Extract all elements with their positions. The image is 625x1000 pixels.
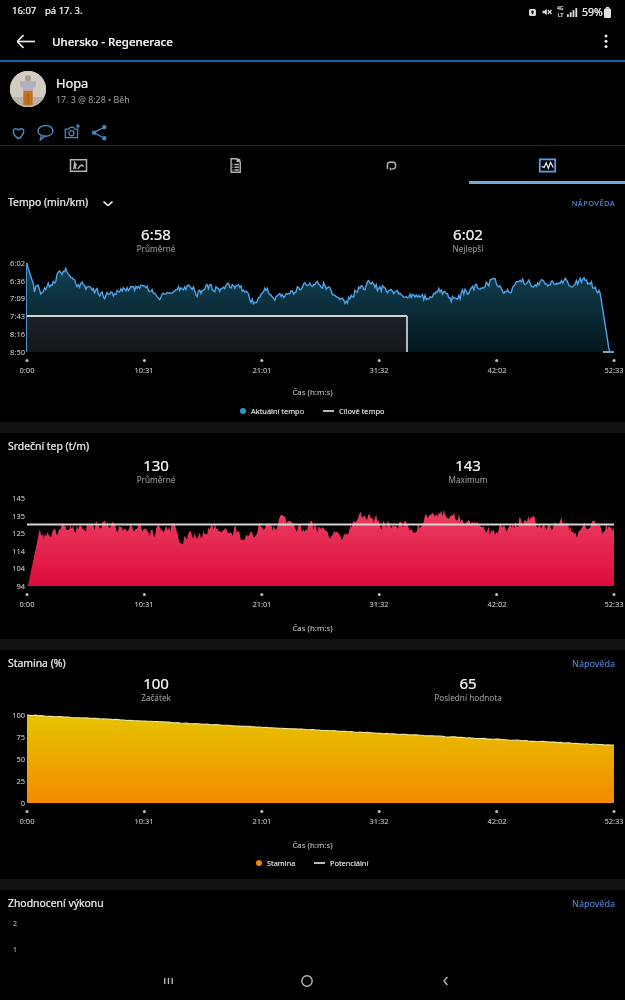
button[interactable]: Like: [5, 119, 32, 145]
button[interactable]: Back: [427, 962, 465, 1000]
staticText: 143: [312, 455, 624, 475]
staticText: 52:33: [584, 365, 625, 375]
button[interactable]: Laps: [313, 146, 469, 184]
staticText: 8:16: [0, 329, 25, 339]
staticText: 52:33: [584, 599, 625, 609]
button[interactable]: Recent apps: [149, 962, 187, 1000]
staticText: Hopa: [56, 74, 89, 91]
staticText: Tempo (min/km): [8, 195, 89, 209]
button[interactable]: Home: [288, 962, 326, 1000]
staticText: 65: [312, 673, 624, 693]
staticText: Potenciální: [330, 858, 369, 868]
button[interactable]: Nápověda: [560, 897, 615, 909]
staticText: Čas (h:m:s): [0, 623, 625, 634]
staticText: 31:32: [349, 599, 409, 609]
staticText: 100: [0, 710, 25, 720]
button[interactable]: Add photo: [59, 119, 86, 145]
staticText: pá 17. 3.: [45, 4, 83, 17]
staticText: 21:01: [232, 816, 292, 826]
staticText: 0:00: [0, 816, 57, 826]
button[interactable]: Share: [86, 119, 113, 145]
staticText: 104: [0, 563, 25, 573]
staticText: Průměrné: [0, 474, 312, 485]
staticText: Aktuální tempo: [251, 406, 305, 416]
staticText: 10:31: [114, 365, 174, 375]
staticText: 6:02: [312, 224, 624, 244]
staticText: Uhersko - Regenerace: [52, 34, 173, 50]
staticText: 1: [13, 945, 18, 955]
staticText: Nápověda: [560, 657, 615, 669]
staticText: 145: [0, 493, 25, 503]
staticText: Cílové tempo: [339, 406, 385, 416]
staticText: 42:02: [467, 599, 527, 609]
staticText: 125: [0, 528, 25, 538]
button[interactable]: Details: [157, 146, 313, 184]
staticText: LT: [558, 12, 564, 19]
button[interactable]: NÁPOVĚDA: [560, 198, 615, 208]
staticText: 21:01: [232, 365, 292, 375]
staticText: Nápověda: [560, 897, 615, 909]
staticText: 135: [0, 511, 25, 521]
staticText: Stamina: [267, 858, 296, 868]
staticText: 10:31: [114, 599, 174, 609]
staticText: Maximum: [312, 474, 624, 485]
staticText: 25: [0, 776, 25, 786]
staticText: 0:00: [0, 365, 57, 375]
staticText: 21:01: [232, 599, 292, 609]
staticText: 31:32: [349, 365, 409, 375]
staticText: Stamina (%): [8, 656, 66, 670]
staticText: 0:00: [0, 599, 57, 609]
staticText: NÁPOVĚDA: [560, 198, 615, 208]
button[interactable]: Back: [6, 22, 44, 60]
staticText: Zhodnocení výkonu: [8, 896, 104, 910]
button[interactable]: Hopa: [0, 62, 625, 116]
staticText: 7:09: [0, 293, 25, 303]
staticText: 130: [0, 455, 312, 475]
staticText: 114: [0, 546, 25, 556]
staticText: Nejlepší: [312, 243, 624, 254]
staticText: Čas (h:m:s): [0, 840, 625, 851]
staticText: 6:36: [0, 276, 25, 286]
staticText: 59%: [582, 5, 603, 19]
button[interactable]: Map: [0, 146, 157, 184]
staticText: 50: [0, 754, 25, 764]
staticText: 0: [0, 798, 25, 808]
staticText: 10:31: [114, 816, 174, 826]
staticText: 100: [0, 673, 312, 693]
staticText: 8:50: [0, 347, 25, 357]
staticText: Začátek: [0, 692, 312, 703]
staticText: 42:02: [467, 816, 527, 826]
button[interactable]: Charts: [469, 146, 625, 184]
staticText: Poslední hodnota: [312, 692, 624, 703]
staticText: 31:32: [349, 816, 409, 826]
button[interactable]: Comment: [32, 119, 59, 145]
staticText: 94: [0, 581, 25, 591]
staticText: 42:02: [467, 365, 527, 375]
staticText: 7:43: [0, 311, 25, 321]
staticText: 4G: [557, 5, 564, 12]
button[interactable]: More options: [587, 22, 625, 60]
staticText: 2: [13, 919, 18, 929]
staticText: 16:07: [12, 4, 37, 17]
staticText: Srdeční tep (t/m): [8, 439, 90, 453]
staticText: 75: [0, 732, 25, 742]
staticText: Průměrné: [0, 243, 312, 254]
staticText: 6:02: [0, 258, 25, 268]
staticText: 52:33: [584, 816, 625, 826]
staticText: Čas (h:m:s): [0, 387, 625, 398]
staticText: 17. 3 @ 8:28 • Běh: [56, 94, 130, 106]
button[interactable]: Nápověda: [560, 657, 615, 669]
staticText: 6:58: [0, 224, 312, 244]
